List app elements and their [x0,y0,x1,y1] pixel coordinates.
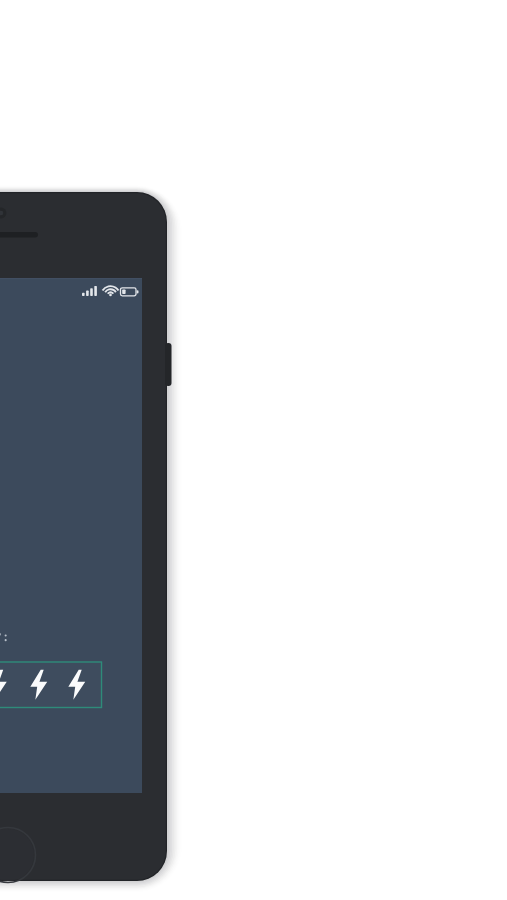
button[interactable]: Power [162,343,174,386]
button[interactable]: Charging level: three bolts [0,662,102,708]
button[interactable]: Home [0,827,36,883]
